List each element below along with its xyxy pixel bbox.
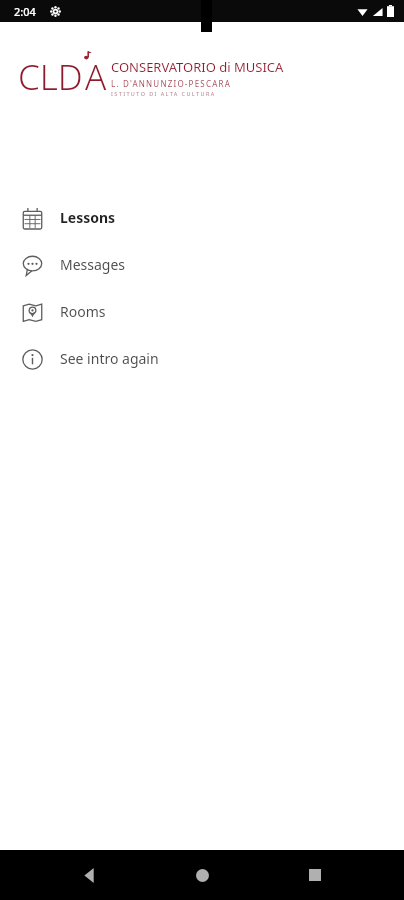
staticText: ISTITUTO DI ALTA CULTURA [111,90,216,97]
button[interactable]: Rooms [0,288,404,335]
staticText: See intro again [60,349,159,368]
button[interactable]: Recents [291,851,339,899]
staticText: Messages [60,255,126,274]
staticText: A [85,53,107,101]
button[interactable]: Home [178,851,226,899]
staticText: L. D'ANNUNZIO-PESCARA [111,78,231,89]
button[interactable]: See intro again [0,335,404,382]
staticText: Rooms [60,302,106,321]
staticText: CONSERVATORIO di MUSICA [111,58,284,76]
staticText: Lessons [60,208,116,227]
staticText: 2:04 [14,4,36,19]
button[interactable]: Lessons [0,194,404,241]
button[interactable]: Back [65,851,113,899]
button[interactable]: Messages [0,241,404,288]
staticText: CLD [18,53,83,101]
